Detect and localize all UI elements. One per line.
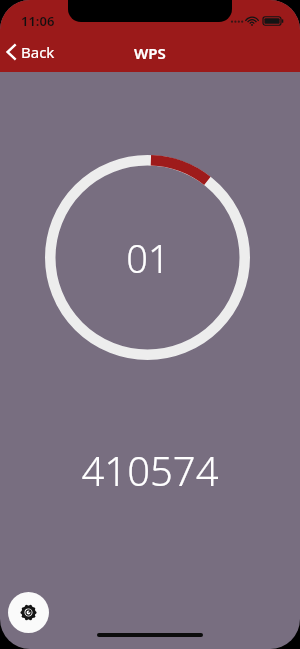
staticText: WPS	[134, 43, 166, 63]
staticText: 410574	[81, 443, 219, 497]
button[interactable]: Settings	[8, 592, 49, 633]
button[interactable]: Back	[0, 38, 63, 66]
staticText: 01	[126, 232, 170, 284]
staticText: 11:06	[21, 12, 55, 30]
staticText: Back	[21, 42, 55, 62]
